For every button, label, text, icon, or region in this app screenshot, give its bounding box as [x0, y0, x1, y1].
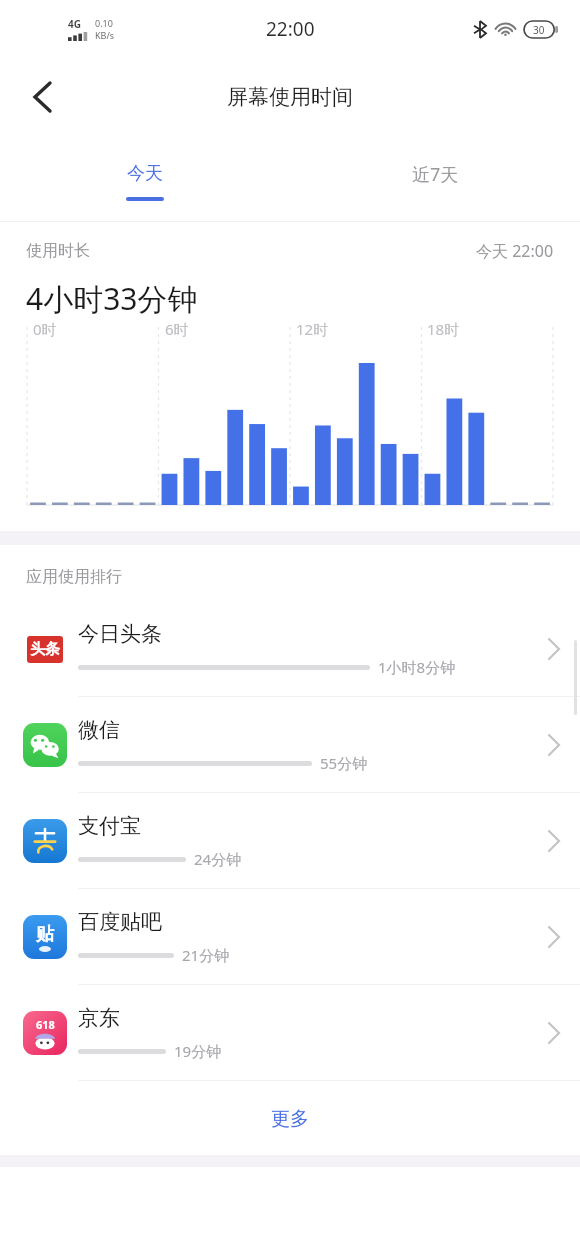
staticText: 19分钟 — [174, 1041, 222, 1061]
button[interactable]: 今天 — [0, 136, 290, 222]
staticText: 微信 — [78, 717, 120, 743]
staticText: 百度贴吧 — [78, 909, 162, 935]
button[interactable]: Back — [16, 71, 68, 123]
staticText: 屏幕使用时间 — [227, 84, 353, 110]
staticText: 22:00 — [266, 16, 315, 42]
staticText: 618 — [36, 1017, 55, 1032]
staticText: 0.10 — [95, 17, 113, 29]
staticText: 京东 — [78, 1005, 120, 1031]
staticText: 今天 22:00 — [476, 240, 554, 262]
staticText: 头条 — [30, 640, 60, 659]
staticText: 更多 — [271, 1107, 309, 1131]
staticText: 0时 — [33, 319, 57, 339]
staticText: 支付宝 — [78, 813, 141, 839]
button[interactable]: 近7天 — [290, 136, 580, 222]
staticText: 24分钟 — [194, 849, 242, 869]
staticText: 12时 — [296, 319, 329, 339]
staticText: 今日头条 — [78, 621, 162, 647]
staticText: 4G — [68, 17, 81, 31]
button[interactable]: 618 — [0, 985, 580, 1080]
staticText: 贴 — [36, 923, 54, 946]
staticText: 18时 — [427, 319, 460, 339]
button[interactable]: 微信 — [0, 697, 580, 792]
button[interactable]: 头条 — [0, 601, 580, 696]
staticText: 近7天 — [412, 162, 459, 187]
staticText: 今天 — [127, 162, 163, 185]
staticText: 55分钟 — [320, 753, 368, 773]
staticText: 6时 — [165, 319, 189, 339]
staticText: 1小时8分钟 — [378, 657, 456, 677]
button[interactable]: 更多 — [0, 1107, 580, 1131]
button[interactable]: 贴 — [0, 889, 580, 984]
button[interactable]: 支付宝 — [0, 793, 580, 888]
staticText: 30 — [533, 23, 545, 37]
staticText: 21分钟 — [182, 945, 230, 965]
staticText: KB/s — [95, 29, 115, 41]
staticText: 4小时33分钟 — [26, 278, 198, 319]
staticText: 使用时长 — [26, 241, 90, 261]
staticText: 应用使用排行 — [26, 567, 122, 587]
